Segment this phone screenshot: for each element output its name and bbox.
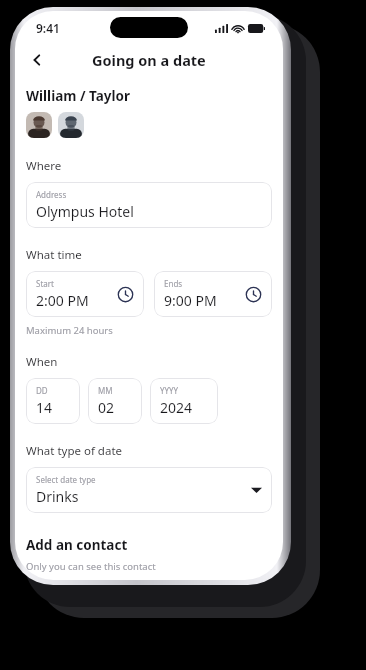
staticText: When — [26, 354, 58, 370]
staticText: Add an contact — [26, 536, 128, 554]
button[interactable]: Back — [23, 46, 51, 74]
staticText: Address — [36, 189, 67, 200]
button[interactable]: Start — [26, 271, 144, 317]
button[interactable]: Address — [26, 182, 272, 228]
staticText: 2:00 PM — [36, 291, 89, 310]
staticText: What time — [26, 247, 82, 263]
staticText: 9:00 PM — [164, 291, 217, 310]
other: Open date type menu — [251, 486, 262, 494]
staticText: Start — [36, 278, 54, 289]
staticText: Only you can see this contact — [26, 560, 156, 573]
button[interactable]: MM — [88, 378, 142, 424]
staticText: 02 — [98, 398, 115, 417]
staticText: Olympus Hotel — [36, 202, 134, 221]
staticText: Ends — [164, 278, 183, 289]
button[interactable]: Select date type — [26, 467, 272, 513]
staticText: MM — [98, 385, 113, 396]
button[interactable]: Participant avatar — [58, 112, 84, 138]
button[interactable]: YYYY — [150, 378, 218, 424]
staticText: DD — [36, 385, 48, 396]
staticText: Going on a date — [92, 50, 206, 70]
button[interactable]: Ends — [154, 271, 272, 317]
button[interactable]: Participant avatar — [26, 112, 52, 138]
staticText: Maximum 24 hours — [26, 324, 113, 337]
staticText: YYYY — [160, 385, 179, 396]
other: Pick time — [245, 286, 262, 303]
button[interactable]: DD — [26, 378, 80, 424]
staticText: Drinks — [36, 487, 79, 506]
staticText: Where — [26, 158, 62, 174]
other: Pick time — [117, 286, 134, 303]
staticText: What type of date — [26, 443, 123, 459]
staticText: 9:41 — [36, 20, 60, 36]
staticText: 2024 — [160, 398, 193, 417]
staticText: 14 — [36, 398, 53, 417]
staticText: William / Taylor — [26, 87, 131, 105]
staticText: Select date type — [36, 474, 96, 485]
